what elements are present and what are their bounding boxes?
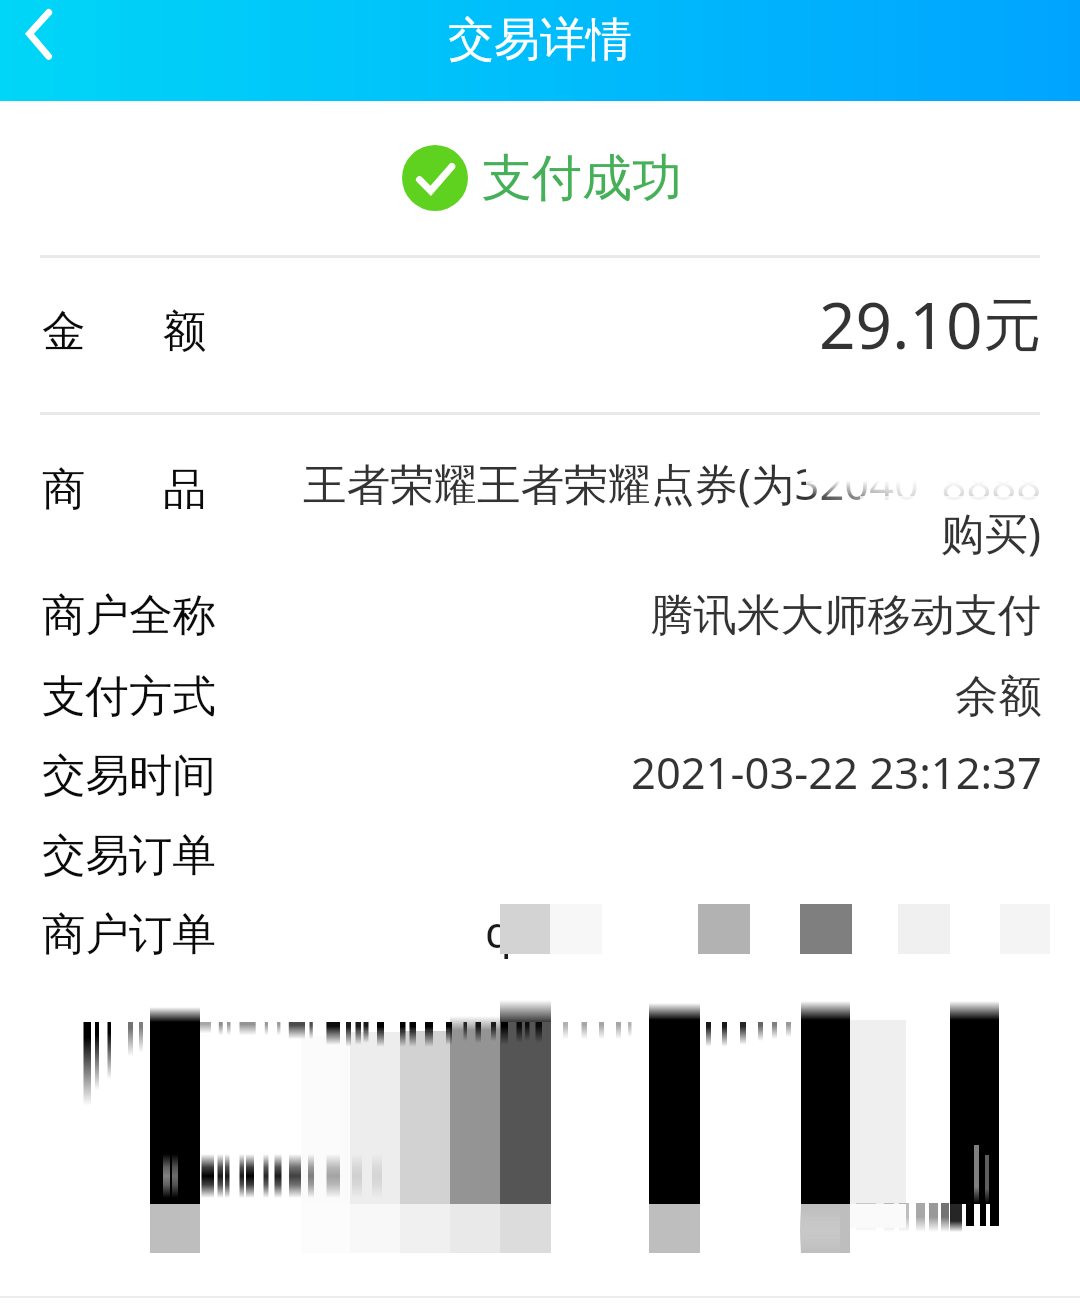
staticText: 29.10 [819,281,983,368]
staticText: 支付成功 [482,147,682,210]
staticText: 商 [42,462,86,517]
staticText: 额 [163,304,207,359]
button[interactable]: 商户订单 [42,907,1042,969]
staticText: 支付方式 [42,669,216,724]
staticText: 交易详情 [448,11,632,69]
staticText: 购买) [941,502,1042,561]
button[interactable]: 支付方式 [42,669,1042,731]
staticText: q [485,901,512,960]
staticText: 商户全称 [42,588,216,643]
staticText: 余额 [955,669,1042,724]
staticText: 2021-03-22 23:12:37 [631,742,1042,801]
staticText: 元 [983,289,1041,362]
staticText: 商户订单 [42,907,216,962]
staticText: 品 [163,462,207,517]
staticText: 王者荣耀王者荣耀点券(为32040 8888 [303,453,1042,512]
button[interactable]: 商户全称 [42,588,1042,650]
staticText: 腾讯米大师移动支付 [650,588,1042,643]
button[interactable]: Back [0,0,101,101]
button[interactable]: 交易时间 [42,748,1042,810]
staticText: 交易时间 [42,748,216,803]
staticText: 交易订单 [42,828,216,883]
staticText: 金 [42,304,86,359]
button[interactable]: 交易订单 [42,828,1042,890]
